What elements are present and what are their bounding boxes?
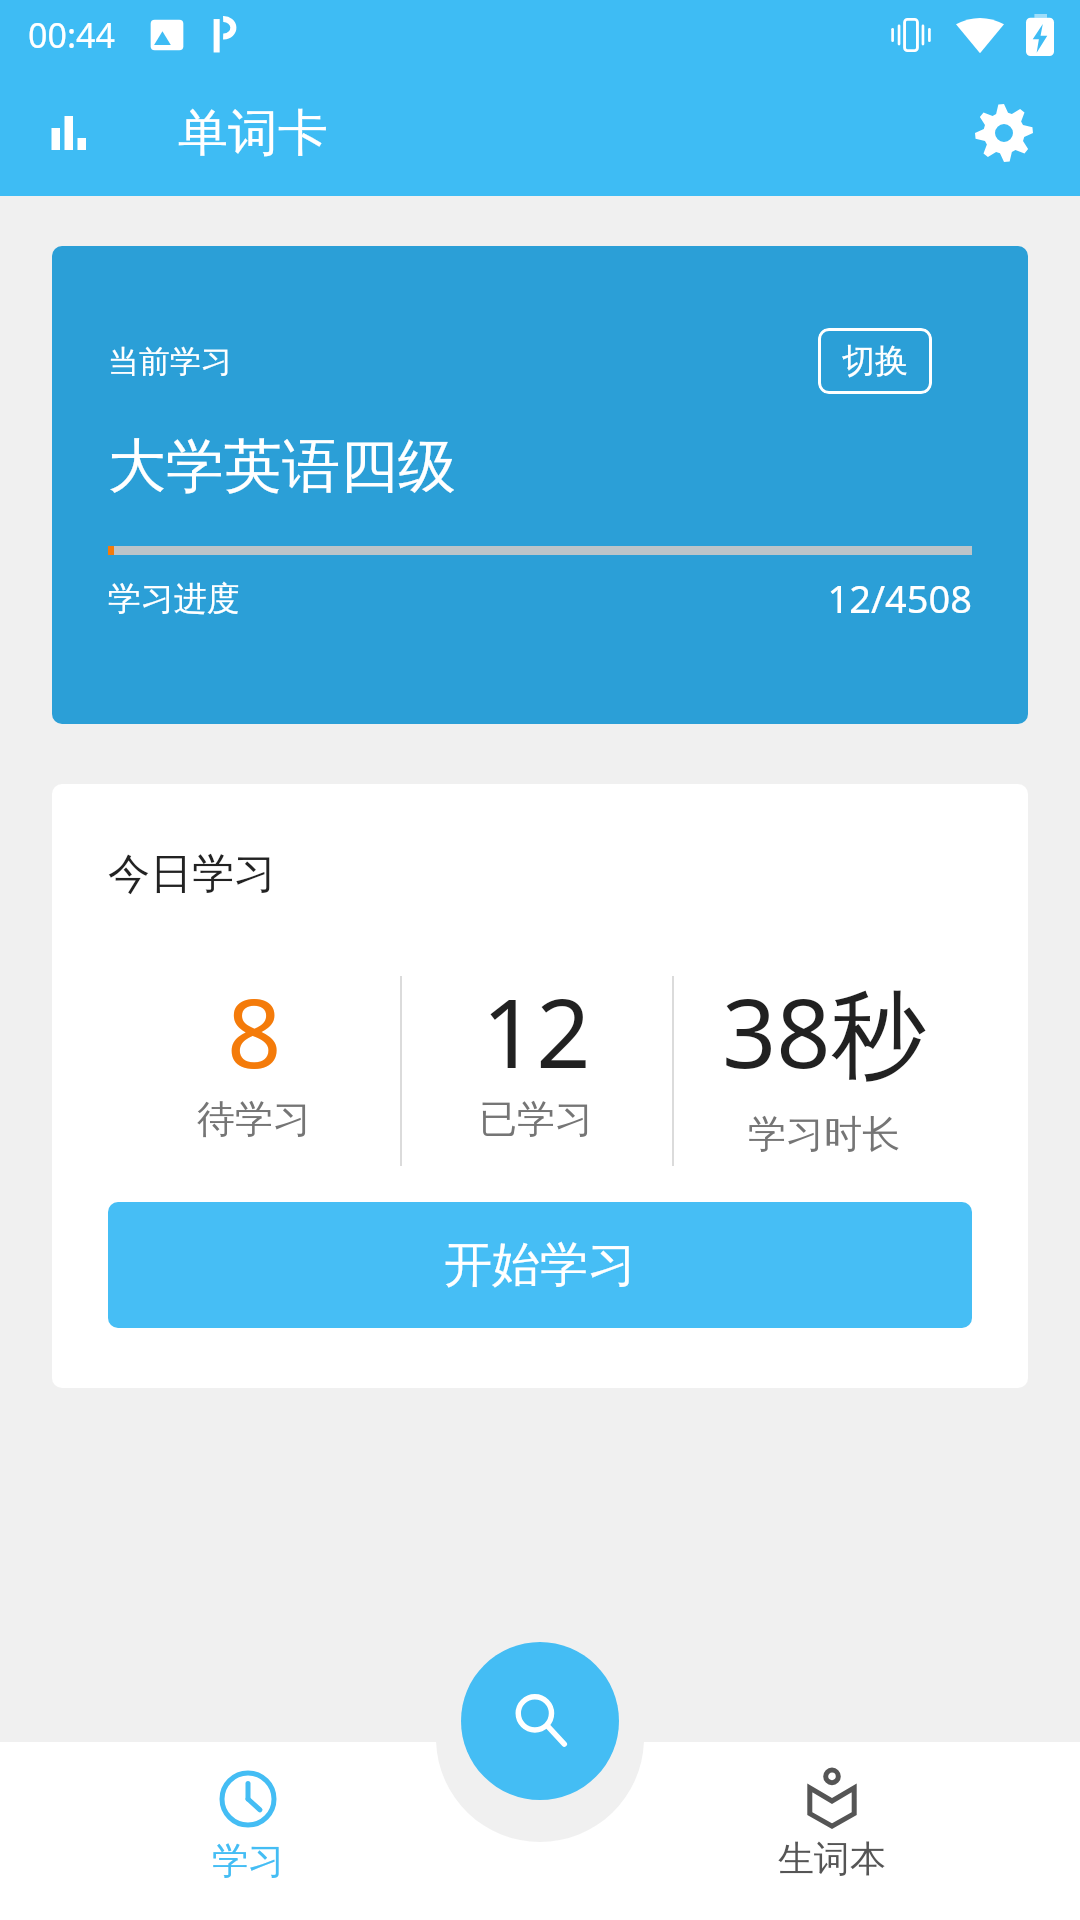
staticText: 待学习 [197, 1095, 311, 1143]
staticText: 00:44 [28, 12, 115, 58]
staticText: 学习时长 [748, 1110, 900, 1158]
staticText: 学习进度 [108, 578, 240, 620]
staticText: 学习 [212, 1838, 284, 1883]
button[interactable]: 切换 [818, 328, 932, 394]
staticText: 12/4508 [698, 572, 972, 624]
staticText: 已学习 [479, 1095, 593, 1143]
button[interactable]: 学习 [148, 1742, 348, 1920]
staticText: 切换 [842, 340, 908, 382]
button[interactable]: 当前学习 [52, 246, 1028, 724]
button[interactable]: 开始学习 [108, 1202, 972, 1328]
staticText: 12 [482, 966, 591, 1095]
staticText: 大学英语四级 [108, 430, 456, 503]
staticText: 单词卡 [178, 102, 328, 165]
staticText: 8 [227, 966, 282, 1095]
staticText: 当前学习 [108, 342, 232, 381]
button[interactable]: 生词本 [732, 1742, 932, 1920]
staticText: 今日学习 [108, 848, 276, 901]
staticText: 生词本 [778, 1836, 886, 1881]
button[interactable]: Statistics [26, 85, 122, 181]
staticText: 38秒 [722, 966, 926, 1096]
button[interactable]: Settings [952, 81, 1056, 185]
staticText: 开始学习 [444, 1235, 636, 1295]
button[interactable]: Search [461, 1642, 619, 1800]
